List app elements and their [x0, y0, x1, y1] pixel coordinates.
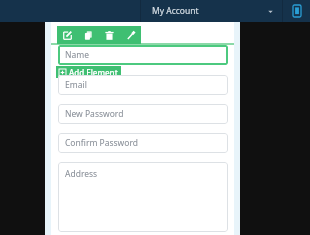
- button[interactable]: Name: [58, 45, 228, 65]
- button[interactable]: Add Element: [56, 66, 121, 78]
- button[interactable]: Style: [120, 26, 141, 44]
- staticText: Address: [65, 168, 98, 180]
- staticText: New Password: [65, 108, 124, 120]
- staticText: Name: [65, 49, 89, 61]
- button[interactable]: My Account: [141, 0, 282, 22]
- button[interactable]: Mobile preview: [283, 0, 310, 22]
- staticText: Email: [65, 79, 87, 91]
- button[interactable]: Confirm Password: [58, 133, 228, 153]
- button[interactable]: Edit: [57, 26, 78, 44]
- button[interactable]: New Password: [58, 104, 228, 124]
- button[interactable]: Duplicate: [78, 26, 99, 44]
- staticText: My Account: [152, 5, 199, 17]
- staticText: Add Element: [69, 67, 118, 78]
- button[interactable]: Delete: [99, 26, 120, 44]
- staticText: Confirm Password: [65, 137, 138, 149]
- button[interactable]: Address: [58, 162, 228, 232]
- button[interactable]: Email: [58, 75, 228, 95]
